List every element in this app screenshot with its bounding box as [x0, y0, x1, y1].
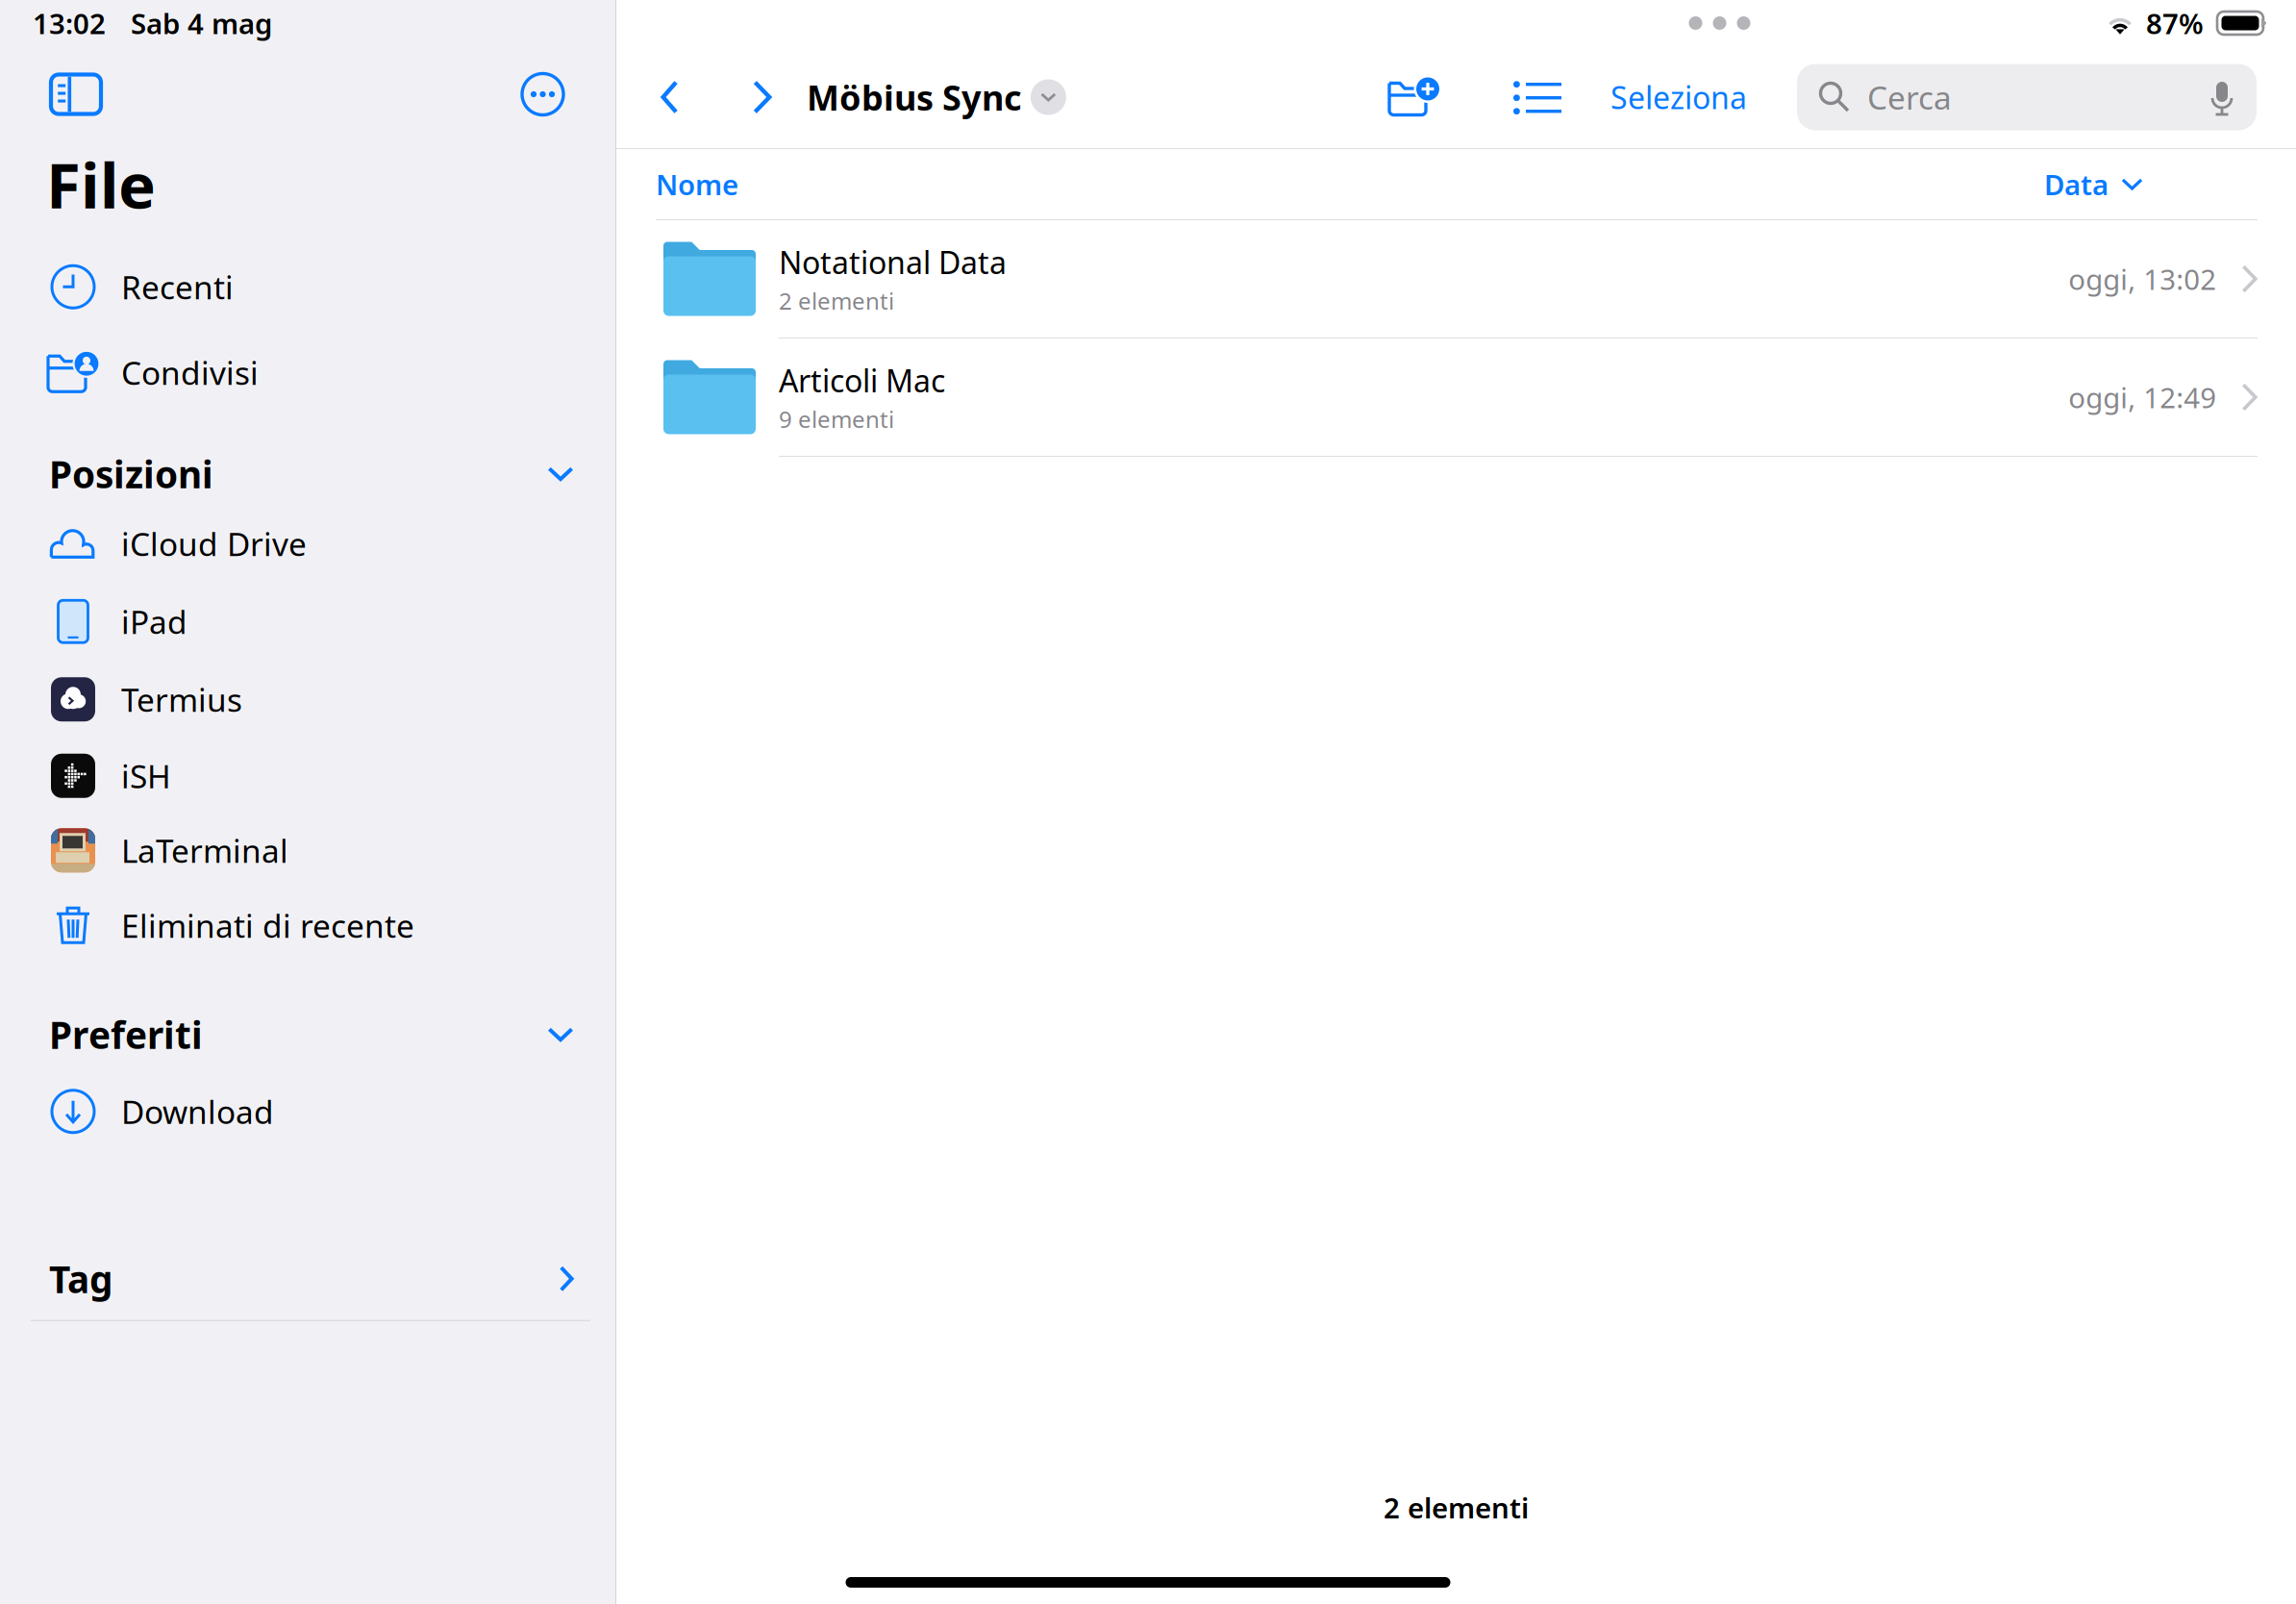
- staticText: Preferiti: [49, 1010, 203, 1059]
- staticText: Notational Data: [779, 242, 1007, 283]
- staticText: Download: [121, 1090, 274, 1133]
- staticText: Cerca: [1867, 76, 1952, 118]
- staticText: 9 elementi: [779, 404, 894, 434]
- button[interactable]: iCloud Drive: [0, 505, 615, 583]
- staticText: oggi, 13:02: [2068, 260, 2216, 298]
- button[interactable]: Folder menu: [1031, 79, 1066, 115]
- staticText: 2 elementi: [1384, 1489, 1529, 1526]
- button[interactable]: LaTerminal: [0, 813, 615, 887]
- staticText: iCloud Drive: [121, 522, 307, 565]
- button[interactable]: Toggle Sidebar: [41, 65, 111, 124]
- button[interactable]: iSH: [0, 738, 615, 813]
- button[interactable]: Tag: [0, 1248, 615, 1310]
- button[interactable]: Articoli Mac: [616, 338, 2296, 457]
- staticText: Posizioni: [49, 449, 213, 499]
- button[interactable]: More options: [512, 64, 573, 125]
- staticText: Sab 4 mag: [131, 4, 272, 42]
- staticText: 87%: [2146, 4, 2204, 42]
- button[interactable]: Posizioni: [0, 443, 615, 505]
- staticText: Möbius Sync: [807, 74, 1022, 120]
- staticText: Eliminati di recente: [121, 904, 414, 947]
- button[interactable]: Back: [649, 68, 690, 126]
- button[interactable]: Eliminati di recente: [0, 887, 615, 963]
- button[interactable]: Forward: [741, 68, 784, 126]
- button[interactable]: Condivisi: [0, 330, 615, 415]
- staticText: Tag: [49, 1254, 112, 1303]
- button[interactable]: Nome: [656, 165, 738, 203]
- staticText: Seleziona: [1610, 77, 1747, 118]
- staticText: 13:02: [33, 4, 106, 42]
- staticText: Nome: [656, 165, 738, 203]
- button[interactable]: Download: [0, 1073, 615, 1150]
- button[interactable]: View options: [1504, 71, 1571, 123]
- staticText: LaTerminal: [121, 829, 288, 872]
- button[interactable]: Notational Data: [616, 220, 2296, 338]
- staticText: 2 elementi: [779, 285, 894, 316]
- staticText: iPad: [121, 600, 187, 643]
- staticText: oggi, 12:49: [2068, 378, 2216, 416]
- staticText: Data: [2044, 165, 2109, 203]
- staticText: Condivisi: [121, 351, 259, 394]
- button[interactable]: Seleziona: [1601, 67, 1757, 127]
- button[interactable]: iPad: [0, 583, 615, 660]
- staticText: File: [46, 142, 156, 226]
- button[interactable]: New Folder: [1378, 68, 1452, 126]
- staticText: iSH: [121, 754, 171, 797]
- button[interactable]: Data: [2044, 165, 2143, 203]
- staticText: Articoli Mac: [779, 360, 945, 401]
- staticText: Recenti: [121, 266, 234, 308]
- button[interactable]: Preferiti: [0, 1004, 615, 1065]
- staticText: Termius: [121, 678, 242, 721]
- button[interactable]: Recenti: [0, 244, 615, 330]
- button[interactable]: Termius: [0, 660, 615, 738]
